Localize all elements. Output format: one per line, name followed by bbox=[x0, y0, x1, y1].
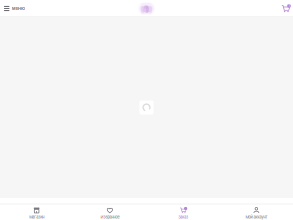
staticText: Заказ bbox=[178, 215, 188, 219]
staticText: Избранное bbox=[100, 215, 119, 219]
button[interactable]: Магазин bbox=[0, 203, 73, 220]
button[interactable]: МЕНЮ bbox=[0, 2, 29, 15]
button[interactable]: На главную bbox=[137, 1, 155, 15]
button[interactable]: Заказ bbox=[146, 203, 220, 220]
staticText: МЕНЮ bbox=[12, 6, 25, 11]
button[interactable]: Мой аккаунт bbox=[220, 203, 293, 220]
staticText: Магазин bbox=[29, 215, 44, 219]
button[interactable]: Избранное bbox=[73, 203, 146, 220]
staticText: Мой аккаунт bbox=[245, 215, 267, 219]
staticText: 1 bbox=[288, 4, 289, 8]
button[interactable]: Корзина bbox=[278, 1, 293, 16]
